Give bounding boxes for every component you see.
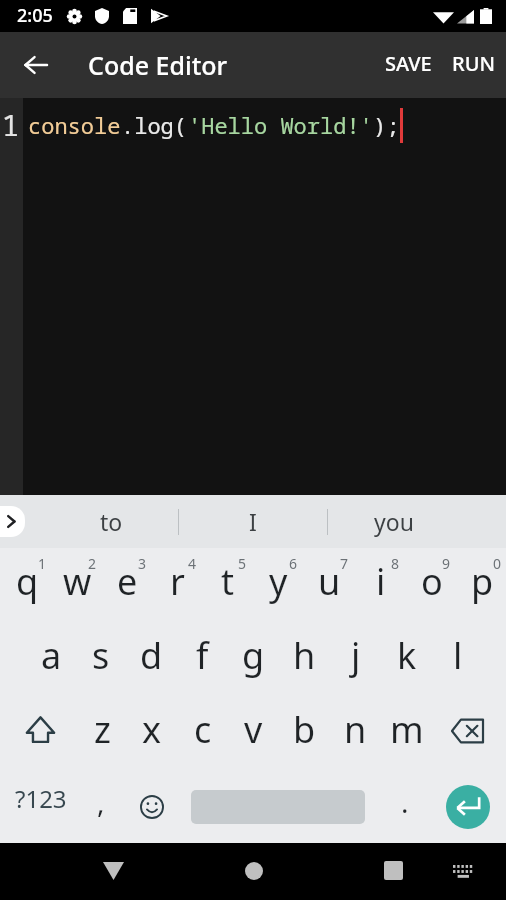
button[interactable]: k <box>379 622 430 696</box>
button[interactable]: q <box>0 548 50 622</box>
button[interactable]: i <box>353 548 404 622</box>
staticText: i <box>376 557 386 606</box>
button[interactable]: Shift <box>0 696 75 770</box>
staticText: f <box>196 631 209 680</box>
staticText: Code Editor <box>88 48 228 82</box>
staticText: 2:05 <box>17 3 53 28</box>
staticText: 0 <box>493 554 502 573</box>
button[interactable]: x <box>125 696 175 770</box>
staticText: SAVE <box>385 50 432 77</box>
button[interactable]: h <box>277 622 328 696</box>
staticText: h <box>293 631 316 680</box>
staticText: 8 <box>391 554 400 573</box>
staticText: ?123 <box>15 782 67 815</box>
staticText: 9 <box>442 554 451 573</box>
staticText: o <box>421 557 443 606</box>
staticText: 4 <box>188 554 197 573</box>
button[interactable]: Emoji <box>126 770 177 843</box>
staticText: d <box>140 631 163 680</box>
staticText: you <box>374 506 414 537</box>
staticText: n <box>344 705 367 754</box>
button[interactable]: d <box>124 622 175 696</box>
button[interactable]: o <box>404 548 455 622</box>
button[interactable]: l <box>430 622 481 696</box>
staticText: k <box>397 631 417 680</box>
button[interactable]: , <box>75 770 126 843</box>
button[interactable]: n <box>328 696 379 770</box>
staticText: s <box>92 631 110 680</box>
staticText: q <box>16 557 39 606</box>
button[interactable]: w <box>50 548 100 622</box>
button[interactable]: c <box>175 696 226 770</box>
button[interactable] <box>177 770 379 843</box>
staticText: w <box>63 557 92 606</box>
staticText: c <box>194 705 212 754</box>
staticText: l <box>453 631 463 680</box>
button[interactable]: b <box>277 696 328 770</box>
button[interactable]: a <box>24 622 74 696</box>
button[interactable]: z <box>75 696 125 770</box>
staticText: g <box>242 631 265 680</box>
button[interactable]: r <box>150 548 200 622</box>
staticText: x <box>142 705 162 754</box>
staticText: e <box>117 557 138 606</box>
staticText: 1 <box>38 554 47 573</box>
button[interactable]: to <box>45 495 178 548</box>
button[interactable]: u <box>302 548 353 622</box>
button[interactable]: Recents <box>323 843 435 900</box>
button[interactable]: SAVE <box>375 32 442 98</box>
button[interactable]: Back <box>0 843 183 900</box>
staticText: 5 <box>238 554 247 573</box>
staticText: b <box>293 705 316 754</box>
button[interactable]: More suggestions <box>0 506 25 537</box>
button[interactable]: p <box>455 548 506 622</box>
staticText: z <box>94 705 111 754</box>
staticText: j <box>351 631 361 680</box>
button[interactable]: I <box>179 495 327 548</box>
button[interactable]: RUN <box>442 32 506 98</box>
button[interactable]: s <box>74 622 124 696</box>
staticText: u <box>318 557 341 606</box>
staticText: 7 <box>340 554 349 573</box>
button[interactable]: t <box>200 548 251 622</box>
button[interactable]: Backspace <box>430 696 506 770</box>
button[interactable]: Switch keyboard <box>435 843 506 900</box>
button[interactable]: e <box>100 548 150 622</box>
staticText: console <box>28 110 121 140</box>
button[interactable]: j <box>328 622 379 696</box>
button[interactable]: f <box>175 622 226 696</box>
staticText: t <box>221 557 234 606</box>
button[interactable]: v <box>226 696 277 770</box>
staticText: v <box>244 705 263 754</box>
button[interactable]: ?123 <box>0 770 75 843</box>
button[interactable]: g <box>226 622 277 696</box>
button[interactable]: Enter <box>430 770 506 843</box>
button[interactable]: Home <box>183 843 323 900</box>
button[interactable]: . <box>379 770 430 843</box>
staticText: . <box>401 783 409 821</box>
staticText: r <box>170 557 185 606</box>
button[interactable]: m <box>379 696 430 770</box>
button[interactable]: y <box>251 548 302 622</box>
staticText: m <box>390 705 424 754</box>
staticText: p <box>471 557 494 606</box>
staticText: , <box>97 783 105 821</box>
button[interactable]: Back <box>3 32 69 98</box>
button[interactable]: you <box>328 495 459 548</box>
staticText: 6 <box>289 554 298 573</box>
staticText: .log( <box>121 110 188 140</box>
staticText: y <box>269 557 288 606</box>
staticText: ); <box>373 110 400 140</box>
staticText: I <box>249 506 257 537</box>
staticText: 'Hello World!' <box>188 110 373 140</box>
staticText: 3 <box>138 554 147 573</box>
staticText: to <box>100 506 123 537</box>
staticText: 1 <box>0 105 22 144</box>
staticText: 2 <box>88 554 97 573</box>
staticText: RUN <box>452 50 495 77</box>
staticText: a <box>41 631 62 680</box>
